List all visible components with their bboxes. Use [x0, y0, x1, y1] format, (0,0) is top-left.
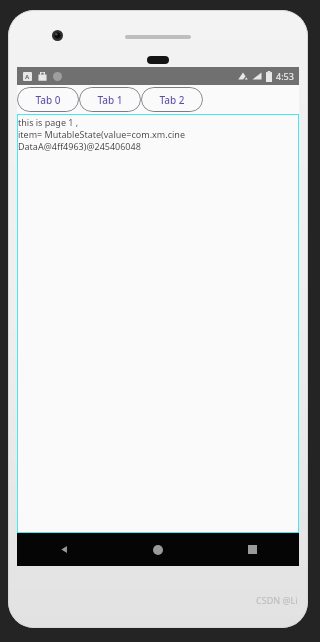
- staticText: this is page 1 ,: [18, 116, 79, 128]
- button[interactable]: Tab 0: [17, 87, 79, 112]
- button[interactable]: Tab 2: [141, 87, 203, 112]
- staticText: Tab 2: [159, 93, 185, 107]
- button[interactable]: Back: [17, 533, 111, 566]
- staticText: Tab 0: [35, 93, 61, 107]
- staticText: A: [25, 73, 30, 81]
- button[interactable]: Recent apps: [205, 533, 299, 566]
- staticText: 4:53: [276, 70, 294, 82]
- staticText: DataA@4ff4963)@245406048: [18, 140, 141, 152]
- staticText: item= MutableState(value=com.xm.cine: [18, 128, 185, 140]
- staticText: CSDN @Li: [256, 594, 298, 606]
- staticText: Tab 1: [97, 93, 123, 107]
- button[interactable]: Home: [111, 533, 205, 566]
- button[interactable]: Tab 1: [79, 87, 141, 112]
